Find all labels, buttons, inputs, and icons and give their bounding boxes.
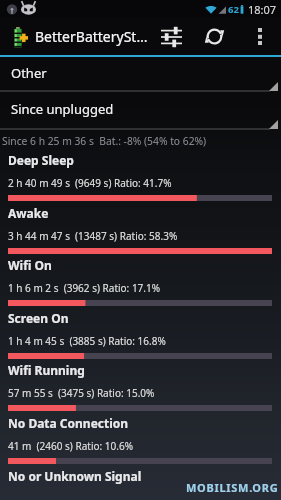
button[interactable]: More options: [242, 18, 278, 55]
button[interactable]: Since unplugged: [0, 92, 281, 130]
button[interactable]: Refresh: [196, 18, 232, 55]
staticText: Wifi On: [8, 257, 52, 273]
button[interactable]: Wifi On: [0, 255, 281, 308]
staticText: 3 h 44 m 47 s (13487 s) Ratio: 58.3%: [8, 229, 178, 243]
staticText: 18:07: [248, 2, 277, 17]
staticText: 1 h 4 m 45 s (3885 s) Ratio: 16.8%: [8, 334, 166, 348]
button[interactable]: Other: [0, 57, 281, 92]
staticText: BetterBatterySt…: [35, 27, 148, 46]
staticText: Other: [11, 64, 47, 82]
button[interactable]: Awake: [0, 203, 281, 256]
staticText: No or Unknown Signal: [8, 468, 142, 484]
button[interactable]: Screen On: [0, 308, 281, 361]
staticText: 2 h 40 m 49 s (9649 s) Ratio: 41.7%: [8, 176, 172, 190]
button[interactable]: Deep Sleep: [0, 150, 281, 203]
staticText: Since 6 h 25 m 36 s Bat.: -8% (54% to 62…: [2, 134, 207, 148]
button[interactable]: No Data Connection: [0, 413, 281, 466]
staticText: Screen On: [8, 310, 69, 326]
staticText: 41 m (2460 s) Ratio: 10.6%: [8, 439, 133, 453]
staticText: Deep Sleep: [8, 152, 74, 168]
staticText: Since unplugged: [11, 100, 114, 118]
staticText: MOBILISM.ORG: [186, 480, 279, 495]
staticText: 57 m 55 s (3475 s) Ratio: 15.0%: [8, 386, 155, 400]
staticText: 62: [228, 3, 239, 16]
staticText: Awake: [8, 205, 49, 221]
staticText: Wifi Running: [8, 362, 85, 378]
staticText: No Data Connection: [8, 415, 129, 431]
button[interactable]: Wifi Running: [0, 360, 281, 413]
button[interactable]: No or Unknown Signal: [0, 466, 281, 500]
button[interactable]: Adjust filters: [153, 18, 189, 55]
staticText: 1 h 6 m 2 s (3962 s) Ratio: 17.1%: [8, 281, 161, 295]
